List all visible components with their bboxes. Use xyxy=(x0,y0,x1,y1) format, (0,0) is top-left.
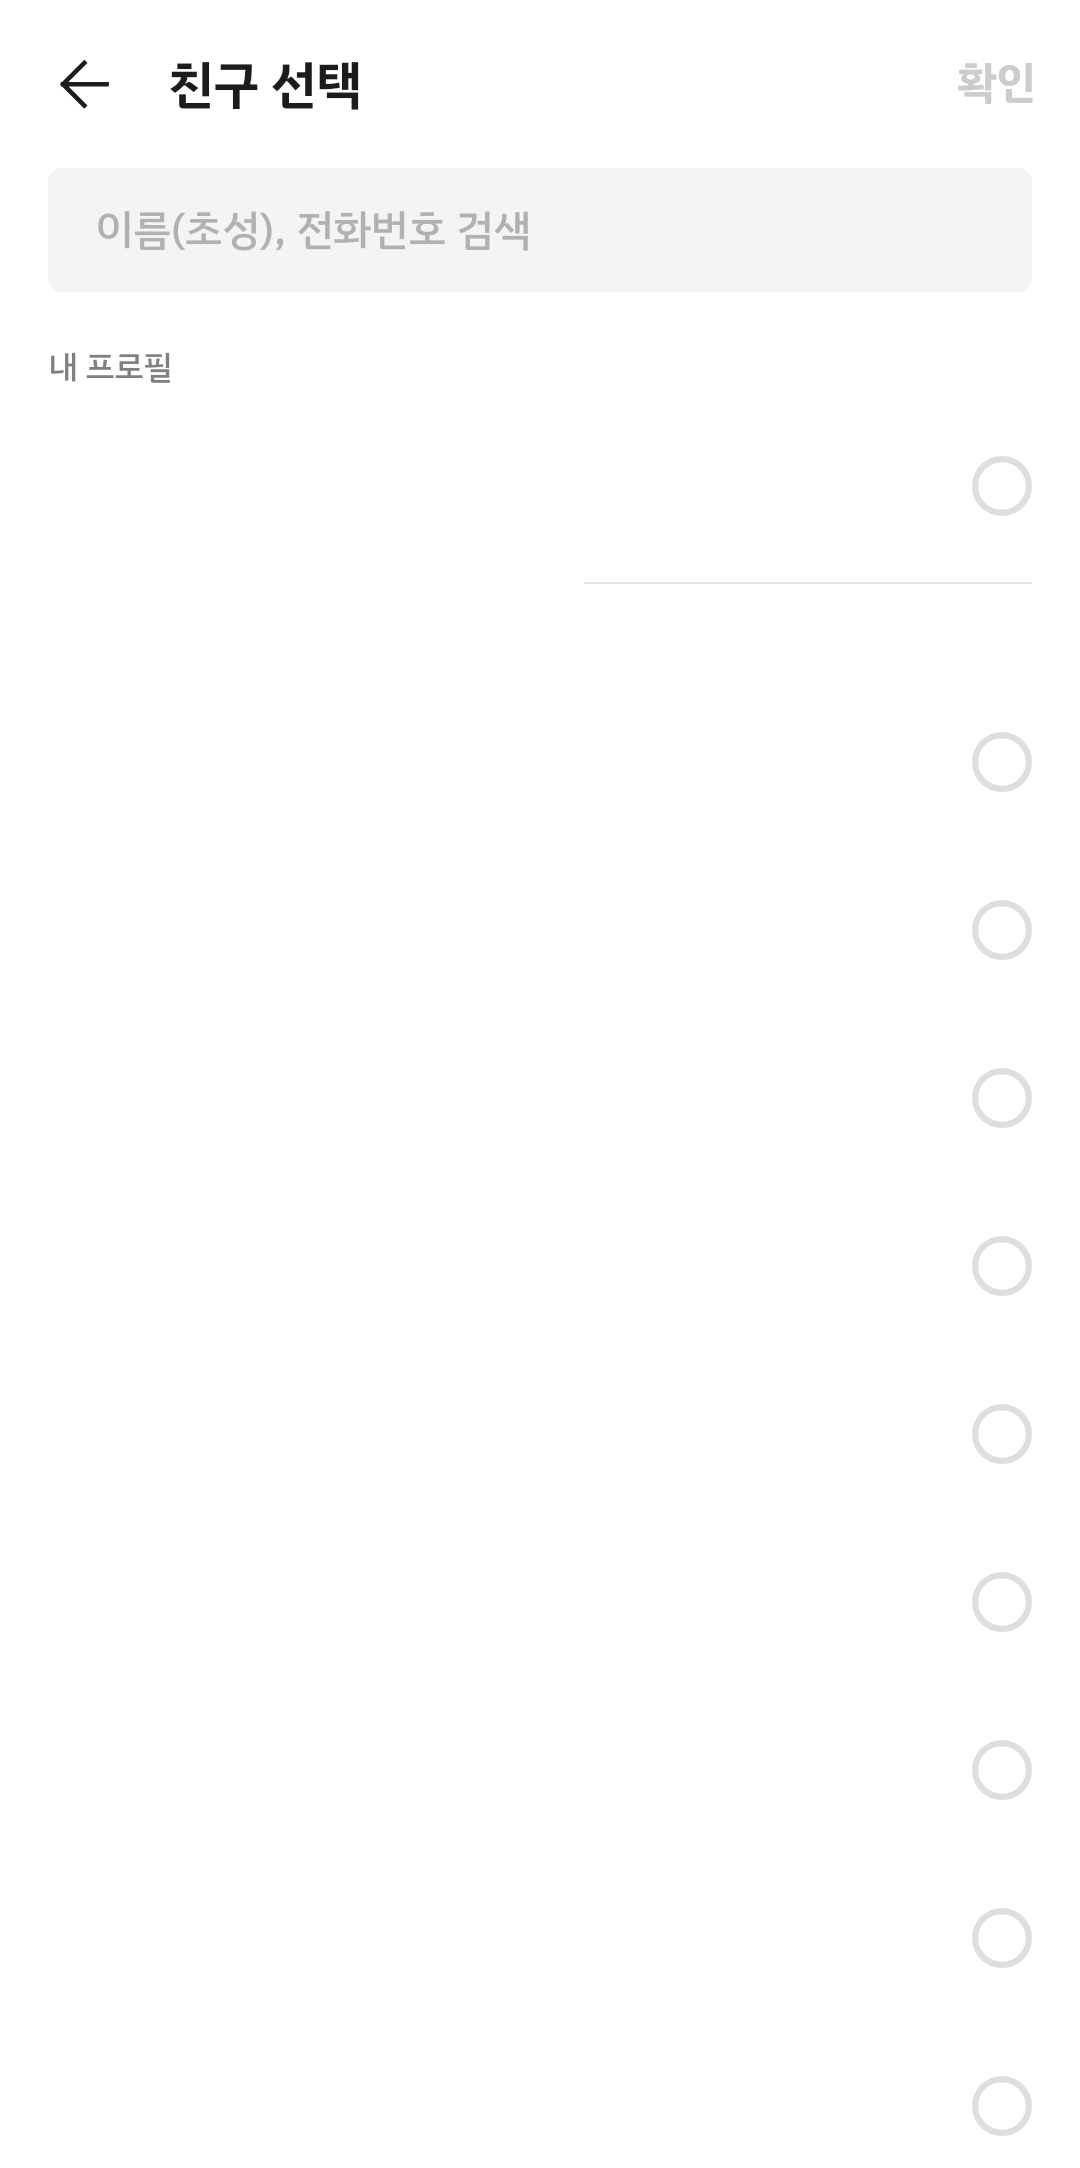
staticText: 이름(초성), 전화번호 검색 xyxy=(96,198,531,261)
staticText: 친구 선택 xyxy=(168,47,363,124)
button[interactable]: 확인 xyxy=(910,20,1080,145)
staticText: 확인 xyxy=(958,50,1036,115)
button[interactable]: 이름(초성), 전화번호 검색 xyxy=(48,168,1032,292)
button[interactable]: Back xyxy=(29,29,139,139)
button[interactable]: 내 프로필 선택 xyxy=(0,410,1080,584)
staticText: 내 프로필 xyxy=(49,343,173,392)
